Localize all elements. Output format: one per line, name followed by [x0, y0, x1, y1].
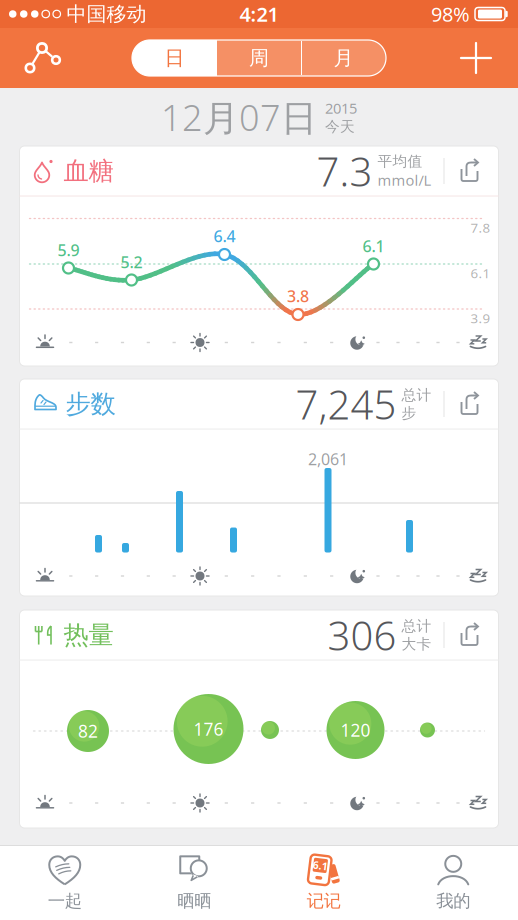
staticText: 176 [193, 717, 223, 740]
staticText: 总计 [401, 617, 431, 635]
button[interactable]: 一起 [0, 845, 129, 920]
staticText: 一起 [48, 890, 82, 912]
staticText: 306 [327, 608, 396, 661]
staticText: 今天 [325, 118, 355, 136]
button[interactable]: 晒晒 [129, 845, 259, 920]
staticText: 2,061 [308, 448, 348, 470]
staticText: 2015 [325, 98, 357, 118]
button[interactable]: Share [444, 158, 482, 184]
button[interactable]: 日 [132, 40, 217, 76]
staticText: 4:21 [239, 1, 278, 27]
staticText: 日 [164, 46, 184, 70]
button[interactable]: 6.1 [259, 845, 388, 920]
staticText: 3.9 [470, 309, 490, 327]
staticText: 5.9 [57, 239, 79, 261]
staticText: 3.8 [287, 285, 309, 307]
staticText: 晒晒 [177, 890, 211, 912]
button[interactable]: 月 [301, 40, 386, 76]
staticText: 步数 [65, 388, 115, 419]
staticText: 大卡 [401, 635, 431, 653]
staticText: mmol/L [377, 170, 431, 190]
staticText: 平均值 [377, 152, 422, 170]
staticText: 6.1 [362, 235, 384, 257]
staticText: 12月07日 [161, 93, 317, 141]
staticText: 7.8 [470, 219, 490, 236]
staticText: 5.2 [120, 251, 142, 273]
staticText: 120 [340, 718, 370, 741]
staticText: 中国移动 [66, 2, 146, 26]
staticText: 6.1 [312, 858, 327, 872]
staticText: 6.1 [470, 264, 490, 282]
button[interactable]: Add record [454, 36, 498, 80]
staticText: 82 [78, 719, 98, 742]
staticText: 6.4 [213, 225, 235, 247]
staticText: 总计 [401, 386, 431, 404]
staticText: 周 [249, 46, 269, 70]
staticText: 7.3 [316, 144, 372, 197]
staticText: 7,245 [295, 377, 396, 430]
button[interactable]: Share [444, 391, 482, 417]
staticText: 记记 [307, 890, 341, 912]
button[interactable]: 周 [217, 40, 301, 76]
staticText: 月 [333, 46, 353, 70]
staticText: 血糖 [63, 155, 113, 186]
button[interactable]: 我的 [388, 845, 518, 920]
button[interactable]: Share [444, 622, 482, 648]
staticText: 我的 [436, 890, 470, 912]
staticText: 98% [431, 1, 470, 27]
staticText: 热量 [63, 619, 113, 650]
staticText: 步 [401, 404, 416, 422]
